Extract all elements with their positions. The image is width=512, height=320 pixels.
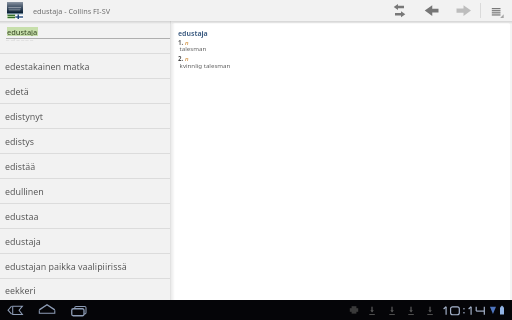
button[interactable]: Recents	[66, 302, 87, 319]
staticText: edustaja	[5, 235, 41, 247]
staticText: edustaa	[5, 210, 39, 222]
staticText: kvinnlig talesman	[178, 61, 231, 69]
button[interactable]: eekkeri	[0, 279, 170, 300]
button[interactable]: edestakainen matka	[0, 54, 170, 78]
staticText: edessä	[5, 39, 35, 41]
button[interactable]: Back	[5, 302, 26, 319]
button[interactable]: edetä	[0, 79, 170, 103]
staticText: n	[185, 38, 189, 46]
button[interactable]: edistää	[0, 154, 170, 178]
button[interactable]: edistys	[0, 129, 170, 153]
staticText: edustaja - Collins FI-SV	[33, 6, 111, 16]
staticText: edustajan paikka vaalipiirissä	[5, 260, 127, 272]
button[interactable]: edistynyt	[0, 104, 170, 128]
button[interactable]: edustajan paikka vaalipiirissä	[0, 254, 170, 278]
button[interactable]: Back	[422, 2, 441, 19]
staticText: edullinen	[5, 185, 44, 197]
button[interactable]: Swap languages	[390, 2, 409, 19]
staticText: eekkeri	[5, 284, 36, 296]
button[interactable]: edustaja	[0, 229, 170, 253]
button[interactable]: Forward	[454, 2, 473, 19]
staticText: edistynyt	[5, 110, 44, 122]
staticText: edestakainen matka	[5, 60, 90, 72]
staticText: 1.	[178, 38, 185, 46]
staticText: edistys	[5, 135, 35, 147]
staticText: 2.	[178, 54, 185, 62]
staticText: n	[185, 54, 189, 62]
staticText: edustaja	[7, 27, 38, 36]
staticText: talesman	[178, 44, 207, 52]
staticText: edistää	[5, 160, 36, 172]
button[interactable]: More options	[487, 2, 506, 19]
button[interactable]: Home	[36, 302, 57, 319]
button[interactable]: edustaa	[0, 204, 170, 228]
staticText: edetä	[5, 85, 29, 97]
staticText: edustaja	[178, 29, 208, 38]
button[interactable]: edullinen	[0, 179, 170, 203]
